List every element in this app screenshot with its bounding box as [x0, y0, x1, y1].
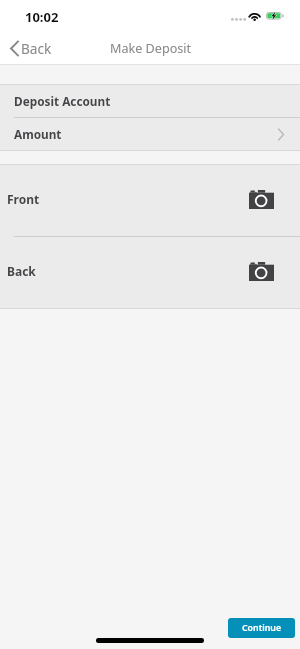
staticText: Back — [21, 39, 52, 58]
staticText: Back — [7, 263, 36, 279]
staticText: Continue — [242, 622, 282, 634]
button[interactable]: Continue — [228, 618, 295, 638]
other: Take photo of Front — [249, 190, 274, 209]
staticText: Make Deposit — [110, 40, 192, 57]
button[interactable]: Deposit Account — [0, 85, 300, 117]
button[interactable]: Back — [0, 35, 60, 62]
button[interactable]: Back — [0, 237, 300, 308]
button[interactable]: Front — [0, 165, 300, 236]
other: Take photo of Back — [249, 262, 274, 281]
staticText: 10:02 — [25, 8, 59, 26]
staticText: Amount — [14, 126, 62, 142]
staticText: Deposit Account — [14, 93, 111, 109]
staticText: Front — [7, 191, 40, 207]
button[interactable]: Amount — [0, 118, 300, 150]
